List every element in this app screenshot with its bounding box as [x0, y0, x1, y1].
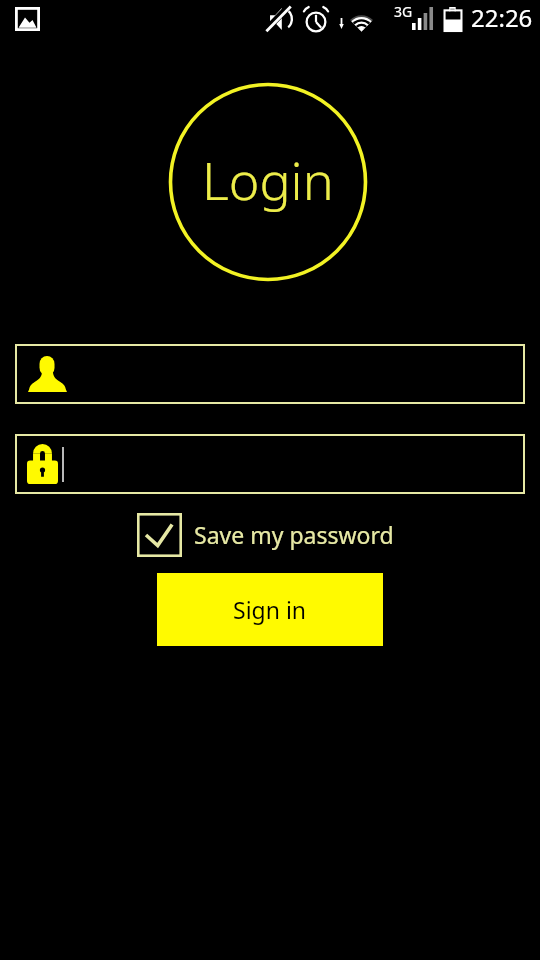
button[interactable]: Username [15, 344, 525, 404]
other: Password [27, 444, 58, 484]
other: Screenshot captured [15, 7, 40, 31]
staticText: Sign in [233, 594, 307, 625]
button[interactable]: Password [15, 434, 525, 494]
button[interactable]: Save my password [137, 513, 394, 557]
other: Silent mode [265, 6, 293, 32]
staticText: 22:26 [471, 1, 533, 34]
other: Alarm set [302, 5, 330, 33]
staticText: Save my password [194, 519, 394, 550]
other: User [28, 356, 67, 392]
staticText: Login [202, 144, 334, 215]
button[interactable]: Sign in [157, 573, 383, 646]
staticText: 3G [394, 2, 413, 21]
